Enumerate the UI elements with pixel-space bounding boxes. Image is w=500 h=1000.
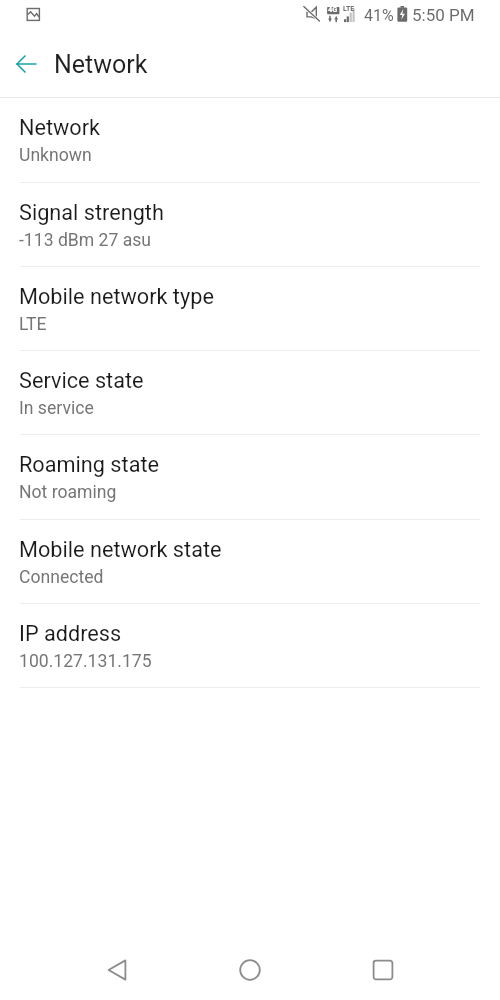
button[interactable]: Home [226,946,274,994]
staticText: IP address [19,621,122,646]
staticText: In service [19,398,94,419]
staticText: Roaming state [19,452,160,477]
button[interactable]: Mobile network type [0,267,500,351]
staticText: Service state [19,368,144,393]
button[interactable]: Navigate up [3,40,51,88]
button[interactable]: Back [93,946,141,994]
button[interactable]: IP address [0,604,500,688]
staticText: -113 dBm 27 asu [19,230,152,251]
staticText: 41% [364,6,394,25]
staticText: LTE [19,314,47,335]
button[interactable]: Mobile network state [0,520,500,604]
staticText: 5:50 PM [412,5,475,25]
staticText: Mobile network type [19,284,214,309]
button[interactable]: Network [0,98,500,183]
staticText: Network [54,50,148,79]
button[interactable]: Signal strength [0,183,500,267]
staticText: LTE [343,5,355,13]
staticText: Signal strength [19,200,164,225]
staticText: 100.127.131.175 [19,651,152,672]
staticText: Unknown [19,145,92,166]
staticText: Not roaming [19,482,117,503]
staticText: 4G [328,5,338,14]
button[interactable]: Recent apps [359,946,407,994]
button[interactable]: Roaming state [0,435,500,520]
staticText: Mobile network state [19,537,222,562]
staticText: Network [19,115,101,140]
staticText: Connected [19,567,104,588]
button[interactable]: Service state [0,351,500,435]
